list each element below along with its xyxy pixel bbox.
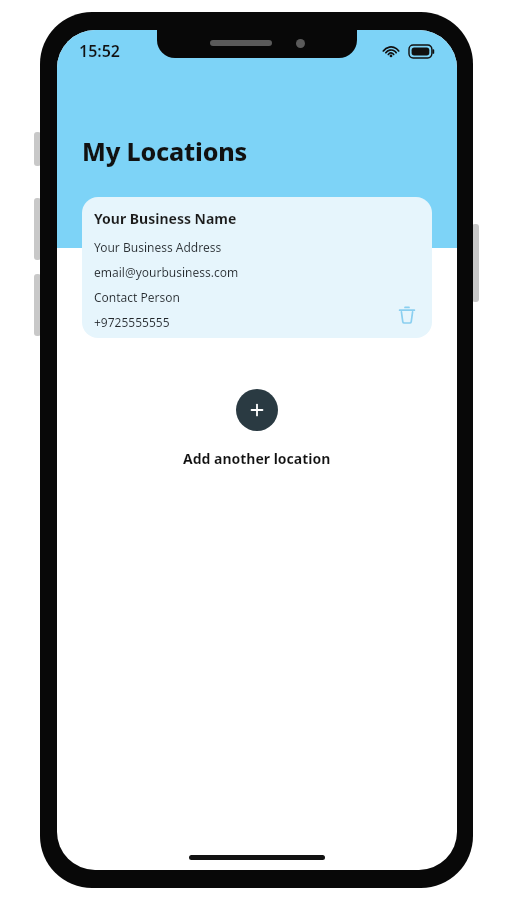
staticText: Add another location [183,449,331,468]
staticText: Your Business Name [94,209,237,228]
button[interactable]: Add another location [165,383,349,474]
staticText: email@yourbusiness.com [94,264,239,280]
staticText: My Locations [82,134,247,168]
staticText: Your Business Address [94,239,222,255]
staticText: 15:52 [79,40,121,62]
staticText: +9725555555 [94,314,170,330]
button[interactable]: Your Business Name [82,197,432,338]
staticText: Contact Person [94,289,180,305]
button[interactable]: Delete location [390,298,424,332]
